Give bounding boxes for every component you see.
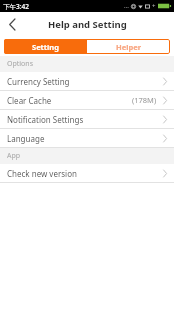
staticText: + [152,2,156,10]
staticText: Options [7,59,34,69]
staticText: Currency Setting [7,76,70,87]
staticText: Check new version [7,168,77,179]
button[interactable]: Language [0,129,174,148]
button[interactable]: Check new version [0,164,174,183]
button[interactable]: Setting [4,39,87,54]
staticText: 下午3:42 [3,2,29,11]
staticText: ... [124,2,129,10]
button[interactable]: Back [0,12,24,36]
staticText: Helper [116,42,142,52]
staticText: Notification Settings [7,114,84,125]
staticText: App [7,151,21,161]
staticText: (178M) [132,95,157,105]
button[interactable]: Currency Setting [0,72,174,91]
button[interactable]: Notification Settings [0,110,174,129]
staticText: Setting [32,42,59,52]
staticText: Clear Cache [7,95,52,106]
button[interactable]: Helper [87,39,170,54]
button[interactable]: Clear Cache [0,91,174,110]
staticText: Help and Setting [48,18,127,31]
staticText: Language [7,133,45,144]
